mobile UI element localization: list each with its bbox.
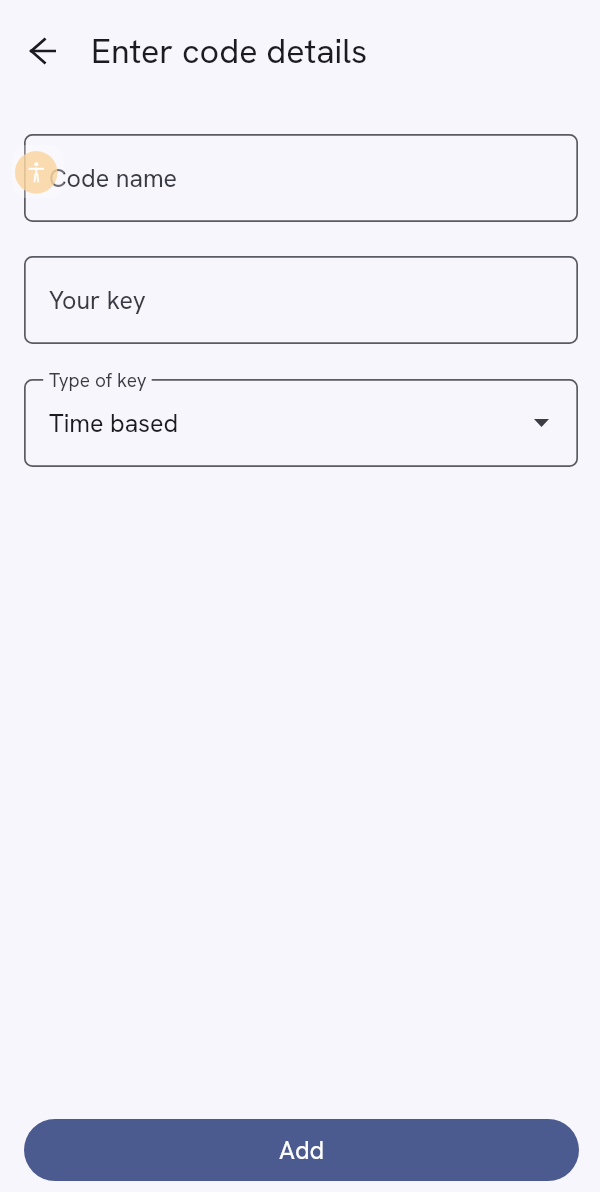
button[interactable]: Add (24, 1119, 579, 1181)
button[interactable]: Code name (24, 134, 578, 222)
staticText: Enter code details (91, 29, 368, 73)
staticText: Type of key (49, 368, 147, 393)
staticText: Code name (49, 162, 178, 195)
staticText: Your key (49, 284, 146, 317)
staticText: Time based (49, 407, 179, 440)
button[interactable]: Type of key (24, 379, 578, 467)
staticText: Add (279, 1134, 325, 1167)
button[interactable]: Your key (24, 256, 578, 344)
button[interactable]: Accessibility shortcut (12, 145, 64, 198)
button[interactable]: Navigate back (18, 26, 68, 76)
